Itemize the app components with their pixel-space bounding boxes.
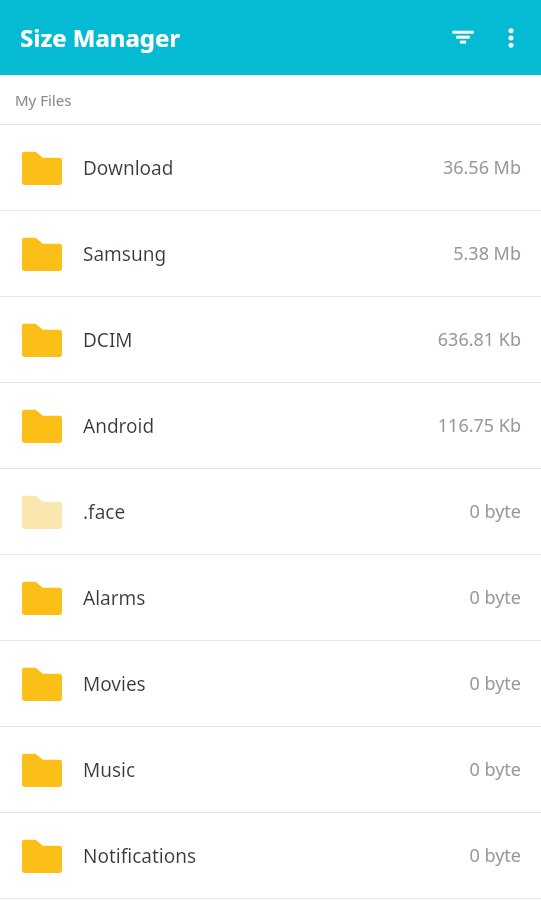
staticText: .face	[83, 499, 469, 525]
button[interactable]: Download	[0, 125, 541, 210]
button[interactable]: Android	[0, 383, 541, 468]
staticText: Movies	[83, 671, 469, 697]
button[interactable]: Samsung	[0, 211, 541, 296]
staticText: 0 byte	[469, 757, 521, 782]
staticText: Music	[83, 757, 469, 783]
staticText: 116.75 Kb	[437, 413, 521, 438]
button[interactable]: Alarms	[0, 555, 541, 640]
staticText: My Files	[15, 90, 72, 110]
staticText: Android	[83, 413, 437, 439]
staticText: Samsung	[83, 241, 453, 267]
staticText: 5.38 Mb	[453, 241, 521, 266]
staticText: Download	[83, 155, 442, 181]
staticText: 636.81 Kb	[437, 327, 521, 352]
button[interactable]: Sort	[439, 14, 487, 62]
staticText: 0 byte	[469, 671, 521, 696]
button[interactable]: Music	[0, 727, 541, 812]
button[interactable]: Movies	[0, 641, 541, 726]
staticText: 0 byte	[469, 585, 521, 610]
staticText: Notifications	[83, 843, 469, 869]
button[interactable]: DCIM	[0, 297, 541, 382]
button[interactable]: .face	[0, 469, 541, 554]
staticText: 36.56 Mb	[442, 155, 521, 180]
staticText: Alarms	[83, 585, 469, 611]
button[interactable]: Notifications	[0, 813, 541, 898]
staticText: Size Manager	[20, 21, 181, 54]
staticText: DCIM	[83, 327, 437, 353]
staticText: 0 byte	[469, 499, 521, 524]
staticText: 0 byte	[469, 843, 521, 868]
button[interactable]: More options	[487, 14, 535, 62]
